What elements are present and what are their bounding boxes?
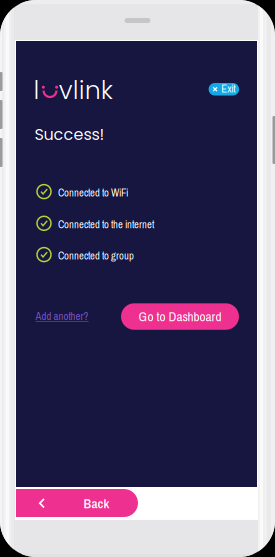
staticText: Connected to group (58, 248, 134, 263)
button[interactable]: Exit (209, 83, 239, 95)
staticText: Connected to the internet (58, 217, 154, 231)
staticText: Back (83, 494, 109, 512)
staticText: vlink (59, 72, 113, 108)
staticText: Go to Dashboard (138, 308, 221, 326)
staticText: Add another? (36, 309, 89, 323)
staticText: Exit (221, 82, 235, 96)
staticText: Connected to WiFi (58, 185, 128, 200)
staticText: Success! (34, 123, 104, 146)
staticText: l (34, 72, 40, 108)
button[interactable]: Add another? (36, 309, 89, 323)
button[interactable]: Back (16, 489, 138, 517)
button[interactable]: Go to Dashboard (121, 303, 239, 330)
